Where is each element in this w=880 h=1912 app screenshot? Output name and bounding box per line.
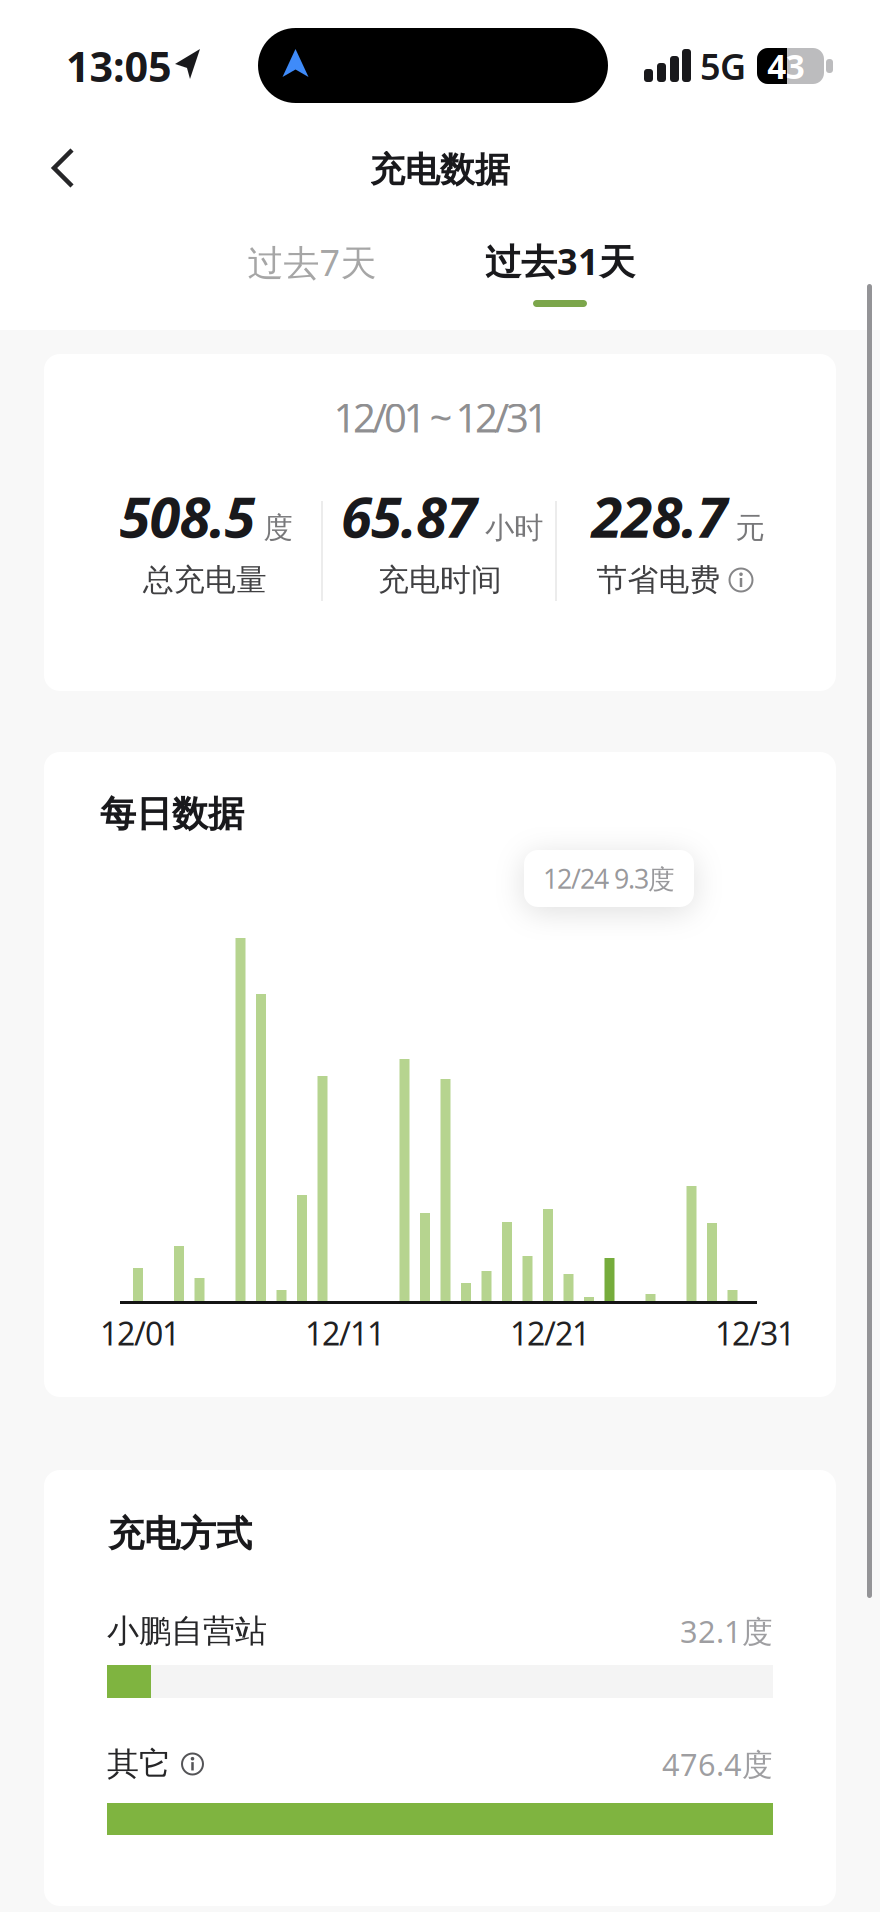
staticText: 度: [263, 510, 292, 546]
staticText: 65.87: [341, 479, 477, 553]
staticText: 32.1度: [680, 1611, 773, 1651]
staticText: 12/11: [305, 1312, 385, 1354]
button[interactable]: 过去7天: [247, 238, 376, 286]
button[interactable]: 节省电费说明: [728, 567, 753, 592]
staticText: 总充电量: [143, 561, 267, 599]
staticText: 充电数据: [370, 149, 510, 191]
staticText: 小时: [485, 510, 543, 546]
button[interactable]: 其它说明: [181, 1752, 204, 1775]
staticText: 13:05: [66, 39, 172, 93]
staticText: 12/01 ~ 12/31: [333, 390, 548, 443]
staticText: 12/01: [100, 1312, 180, 1354]
staticText: 43: [767, 44, 805, 88]
staticText: 228.7: [591, 479, 727, 553]
staticText: 充电方式: [108, 1512, 252, 1556]
staticText: 12/31: [715, 1312, 795, 1354]
staticText: 充电时间: [378, 561, 502, 599]
staticText: 508.5: [119, 479, 255, 553]
staticText: 小鹏自营站: [107, 1611, 267, 1651]
button[interactable]: Back: [0, 0, 110, 330]
staticText: 12/24 9.3度: [543, 861, 675, 896]
staticText: 元: [735, 510, 764, 546]
staticText: 每日数据: [100, 792, 244, 836]
staticText: 其它: [107, 1744, 171, 1784]
staticText: 476.4度: [662, 1744, 773, 1784]
staticText: 5G: [700, 42, 746, 90]
staticText: 12/21: [510, 1312, 590, 1354]
button[interactable]: 过去31天: [485, 237, 635, 285]
staticText: 节省电费: [596, 561, 720, 599]
staticText: 过去31天: [485, 237, 635, 285]
staticText: 过去7天: [247, 238, 376, 286]
